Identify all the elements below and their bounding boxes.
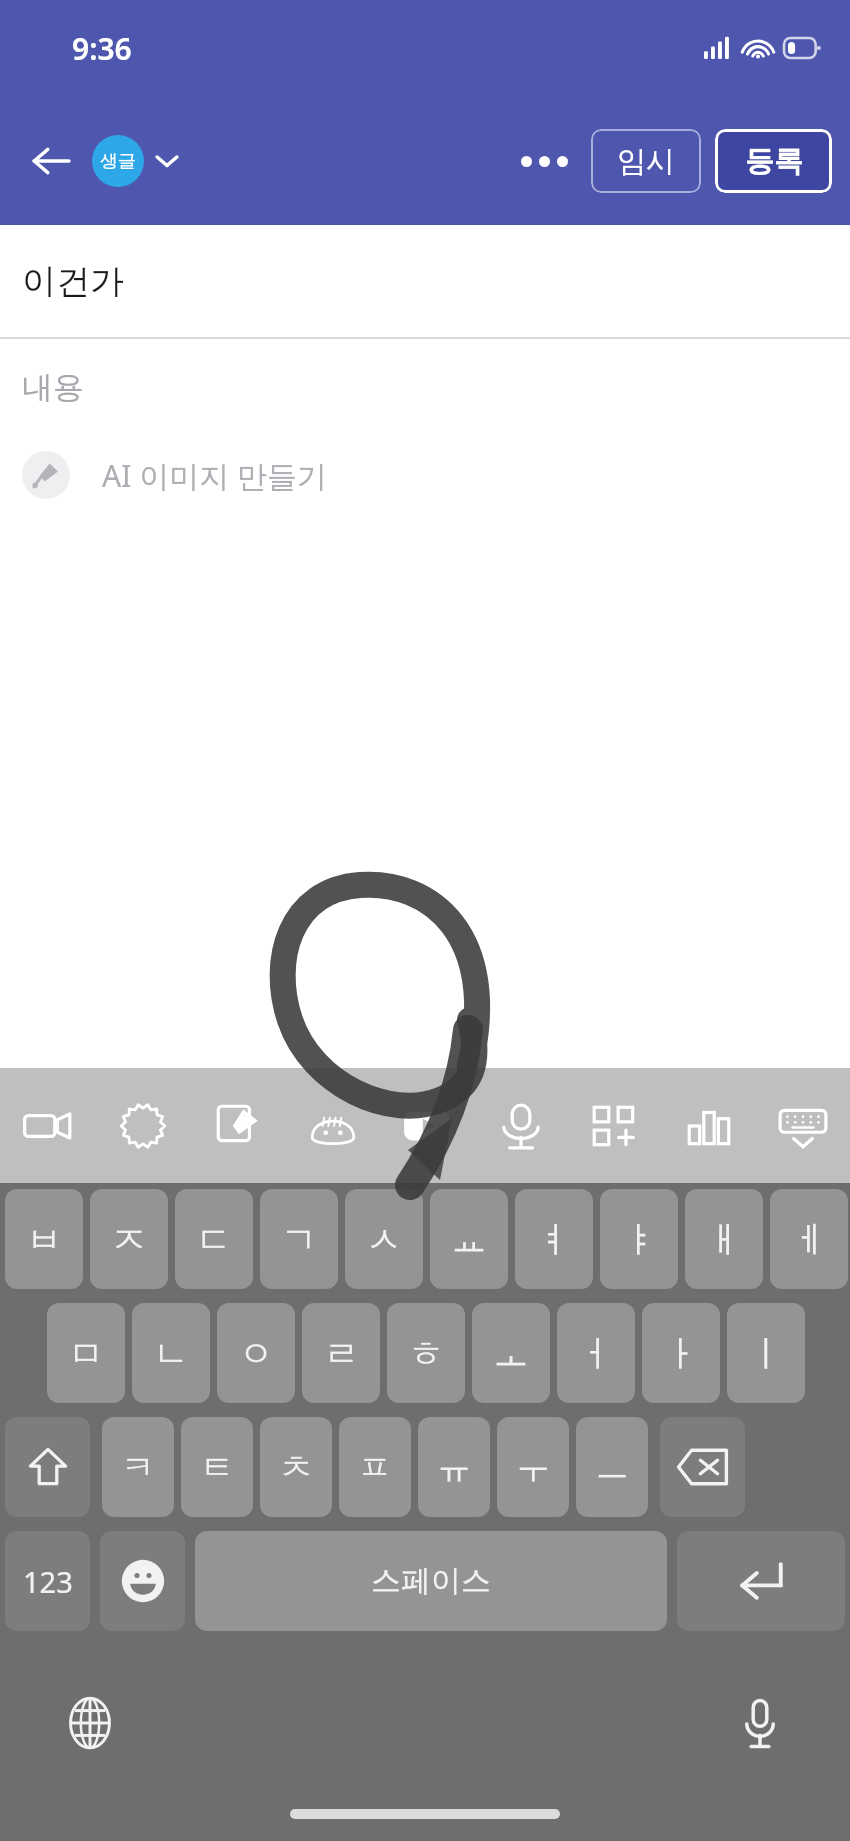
staticText: 임시 [617,143,675,180]
staticText: ㅗ [493,1331,529,1376]
staticText: ㅋ [121,1446,155,1489]
staticText: ㅡ [595,1446,629,1489]
button[interactable]: ㅅ [345,1189,423,1289]
staticText: ㄴ [153,1331,189,1376]
staticText: ㅌ [200,1446,234,1489]
staticText: 생글 [100,150,136,173]
staticText: ㅑ [621,1217,657,1262]
staticText: ㅕ [536,1217,572,1262]
button[interactable]: GIF [95,1068,190,1183]
button[interactable]: ㅠ [418,1417,490,1517]
button[interactable]: ㄷ [175,1189,253,1289]
staticText: ㅂ [26,1217,62,1262]
button[interactable]: 생글 [92,135,180,187]
button[interactable]: ㅏ [642,1303,720,1403]
button[interactable]: YouTube [380,1068,474,1183]
button[interactable]: AI 이미지 만들기 [0,435,850,515]
button[interactable]: ㄱ [260,1189,338,1289]
button[interactable]: ㅈ [90,1189,168,1289]
staticText: ㅈ [111,1217,147,1262]
button[interactable]: ㅕ [515,1189,593,1289]
button[interactable]: ㅣ [727,1303,805,1403]
button[interactable]: 이건가 [0,225,850,337]
staticText: ㅓ [578,1331,614,1376]
button[interactable]: ㅁ [47,1303,125,1403]
button[interactable]: ㅡ [576,1417,648,1517]
staticText: ㄷ [196,1217,232,1262]
staticText: ㅍ [358,1446,392,1489]
staticText: ㅔ [791,1217,827,1262]
staticText: 9:36 [72,28,132,69]
button[interactable]: ㅛ [430,1189,508,1289]
staticText: ㅠ [437,1446,471,1489]
button[interactable]: AI drawing [190,1068,285,1183]
button[interactable]: 123 [5,1531,90,1631]
button[interactable]: ㅜ [497,1417,569,1517]
button[interactable]: Apps [568,1068,662,1183]
staticText: ㅎ [408,1331,444,1376]
button[interactable]: ㅔ [770,1189,848,1289]
staticText: 123 [23,1562,73,1601]
button[interactable]: Poll [662,1068,756,1183]
button[interactable]: Voice input [720,1683,800,1763]
staticText: ㄹ [323,1331,359,1376]
button[interactable]: Shift [5,1417,90,1517]
button[interactable]: ㅌ [181,1417,253,1517]
button[interactable]: Change language [50,1683,130,1763]
button[interactable]: Back [22,132,80,190]
staticText: ㅊ [279,1446,313,1489]
staticText: ㅁ [68,1331,104,1376]
button[interactable]: Video [0,1068,95,1183]
staticText: 등록 [745,143,803,180]
button[interactable]: 임시 [591,129,701,193]
staticText: ㅇ [238,1331,274,1376]
button[interactable]: 내용 [0,339,850,435]
button[interactable]: 스페이스 [195,1531,667,1631]
staticText: ㄱ [281,1217,317,1262]
staticText: ㅐ [706,1217,742,1262]
staticText: 내용 [22,368,84,407]
staticText: ㅅ [366,1217,402,1262]
staticText: 이건가 [22,260,124,303]
button[interactable]: Voice [474,1068,568,1183]
button[interactable]: ㅇ [217,1303,295,1403]
button[interactable]: Emoji [100,1531,185,1631]
staticText: ㅣ [748,1331,784,1376]
button[interactable]: ㄹ [302,1303,380,1403]
staticText: 스페이스 [371,1562,491,1600]
staticText: AI 이미지 만들기 [102,455,327,496]
button[interactable]: Sticker [285,1068,380,1183]
button[interactable]: ㅍ [339,1417,411,1517]
button[interactable]: ㅂ [5,1189,83,1289]
button[interactable]: ㅋ [102,1417,174,1517]
staticText: ㅜ [516,1446,550,1489]
button[interactable]: ㅓ [557,1303,635,1403]
button[interactable]: Enter [677,1531,845,1631]
button[interactable]: Backspace [660,1417,745,1517]
staticText: ㅛ [451,1217,487,1262]
button[interactable]: More options [509,131,579,191]
button[interactable]: ㅐ [685,1189,763,1289]
button[interactable]: ㅎ [387,1303,465,1403]
button[interactable]: Hide keyboard [756,1068,850,1183]
button[interactable]: 등록 [715,129,832,193]
staticText: ㅏ [663,1331,699,1376]
button[interactable]: ㄴ [132,1303,210,1403]
button[interactable]: ㅊ [260,1417,332,1517]
button[interactable]: ㅑ [600,1189,678,1289]
button[interactable]: ㅗ [472,1303,550,1403]
